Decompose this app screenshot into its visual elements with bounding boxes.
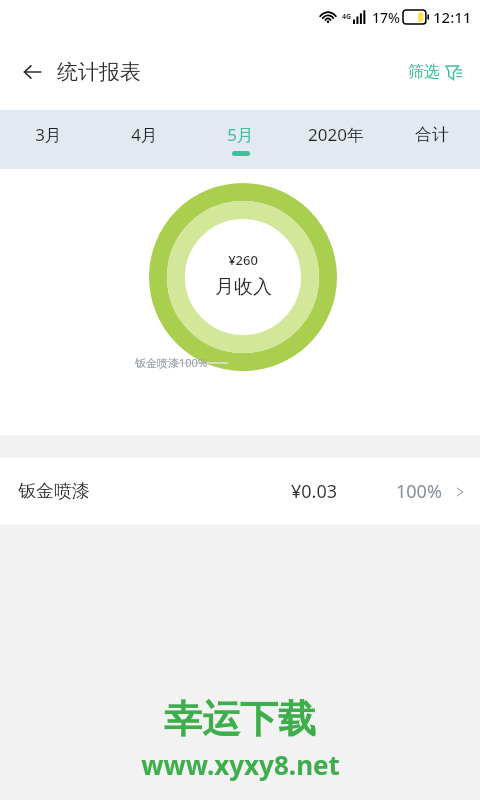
staticText: ¥0.03 bbox=[291, 479, 338, 504]
staticText: 钣金喷漆 bbox=[18, 480, 90, 503]
staticText: 100% bbox=[396, 479, 442, 504]
button[interactable]: 筛选 bbox=[404, 54, 466, 90]
staticText: 5月 bbox=[227, 123, 254, 146]
button[interactable]: 4月 bbox=[96, 110, 192, 169]
staticText: 4G bbox=[342, 12, 352, 22]
staticText: 合计 bbox=[415, 124, 449, 145]
staticText: 幸运下载 bbox=[164, 695, 316, 743]
button[interactable]: Back bbox=[8, 48, 56, 96]
staticText: 4月 bbox=[131, 123, 158, 146]
button[interactable]: 3月 bbox=[0, 110, 96, 169]
staticText: 17% bbox=[372, 8, 400, 27]
staticText: 钣金喷漆100% bbox=[135, 355, 208, 370]
staticText: 筛选 bbox=[408, 62, 440, 82]
button[interactable]: 钣金喷漆 bbox=[0, 458, 480, 525]
staticText: 2020年 bbox=[308, 123, 364, 146]
staticText: 月收入 bbox=[215, 275, 272, 299]
staticText: www.xyxy8.net bbox=[141, 747, 340, 782]
button[interactable]: 5月 bbox=[192, 110, 288, 169]
staticText: 12:11 bbox=[433, 7, 472, 27]
button[interactable]: 2020年 bbox=[288, 110, 384, 169]
staticText: ¥260 bbox=[228, 251, 258, 269]
staticText: 3月 bbox=[35, 123, 62, 146]
button[interactable]: 合计 bbox=[384, 110, 480, 169]
staticText: 统计报表 bbox=[57, 59, 141, 85]
